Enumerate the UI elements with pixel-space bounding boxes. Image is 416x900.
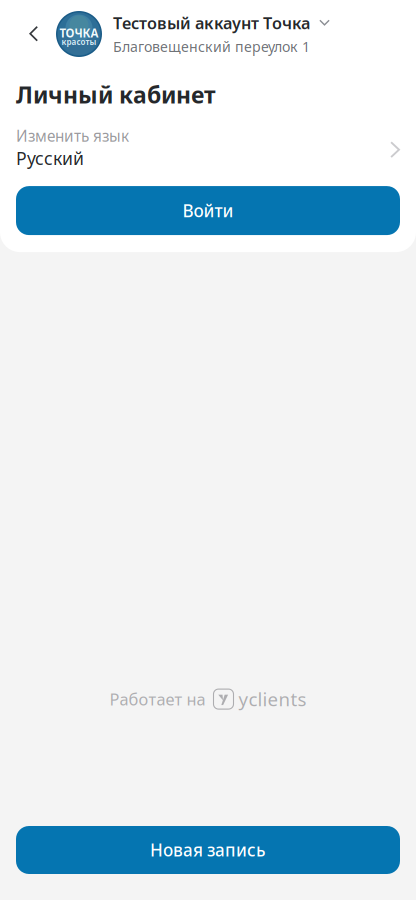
button[interactable]: Войти — [16, 186, 400, 235]
staticText: Русский — [16, 146, 84, 170]
staticText: красоты — [61, 37, 96, 47]
staticText: Новая запись — [150, 838, 266, 862]
staticText: Личный кабинет — [16, 79, 216, 110]
button[interactable]: Изменить язык — [0, 110, 416, 170]
staticText: yclients — [238, 686, 306, 712]
staticText: Войти — [182, 199, 233, 222]
staticText: Работает на — [109, 688, 205, 710]
staticText: ТОЧКА — [59, 25, 98, 41]
button[interactable]: Back — [12, 11, 56, 57]
button[interactable]: Новая запись — [16, 826, 400, 874]
staticText: Тестовый аккаунт Точка — [113, 12, 310, 34]
staticText: Благовещенский переулок 1 — [113, 37, 310, 56]
staticText: Изменить язык — [16, 125, 129, 146]
button[interactable]: ТОЧКА — [56, 11, 416, 57]
